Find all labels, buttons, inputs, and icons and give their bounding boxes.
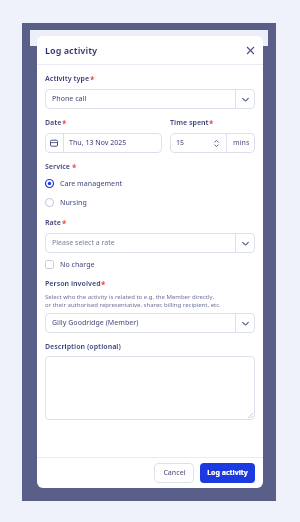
staticText: * [209, 118, 214, 129]
staticText: Please select a rate [52, 238, 235, 248]
button[interactable]: Thu, 13 Nov 2025 [45, 133, 162, 153]
staticText: mins [233, 138, 250, 148]
staticText: No charge [60, 260, 95, 270]
staticText: Nursing [60, 198, 87, 208]
staticText: * [62, 218, 67, 229]
staticText: * [62, 118, 67, 129]
button[interactable]: Log activity [200, 463, 255, 483]
button[interactable]: Please select a rate [45, 233, 255, 253]
staticText: * [101, 279, 106, 290]
staticText: Select who the activity is related to e.… [45, 293, 215, 301]
staticText: 15 [176, 138, 185, 148]
staticText: or their authorised representative, shar… [45, 301, 221, 309]
staticText: Log activity [45, 44, 98, 56]
staticText: Care management [60, 179, 123, 189]
button[interactable]: 15 [170, 133, 255, 153]
button[interactable]: Care management [45, 176, 255, 191]
staticText: Rate [45, 218, 62, 228]
button[interactable]: Cancel [154, 463, 194, 483]
staticText: Gilly Goodridge (Member) [52, 318, 235, 328]
staticText: Time spent [170, 118, 209, 128]
staticText: Service [45, 162, 72, 172]
button[interactable]: No charge [45, 258, 255, 271]
staticText: Date [45, 118, 62, 128]
staticText: Log activity [207, 468, 248, 478]
button[interactable]: Close [243, 43, 257, 57]
staticText: * [72, 162, 77, 173]
staticText: Cancel [163, 468, 186, 478]
staticText: Thu, 13 Nov 2025 [69, 138, 127, 148]
button[interactable]: Nursing [45, 195, 255, 210]
button[interactable]: Gilly Goodridge (Member) [45, 313, 255, 333]
staticText: Person involved [45, 279, 101, 289]
staticText: Description (optional) [45, 342, 121, 352]
button[interactable] [45, 356, 255, 420]
staticText: * [90, 74, 95, 85]
staticText: Phone call [52, 94, 235, 104]
staticText: Activity type [45, 74, 90, 84]
button[interactable]: Phone call [45, 89, 255, 109]
